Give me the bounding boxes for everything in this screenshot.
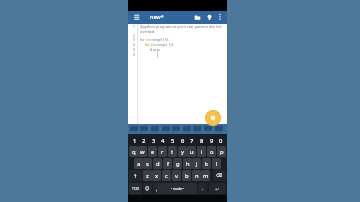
staticText: y bbox=[181, 148, 184, 156]
staticText: 5 bbox=[133, 47, 135, 52]
button[interactable]: ⌫ bbox=[213, 170, 226, 181]
staticText: ☺ bbox=[145, 186, 150, 191]
staticText: , bbox=[156, 186, 158, 192]
button[interactable]: p bbox=[217, 146, 226, 157]
button[interactable] bbox=[183, 126, 191, 131]
button[interactable]: 6 bbox=[178, 135, 188, 146]
button[interactable] bbox=[193, 126, 201, 131]
button[interactable]: ↵ bbox=[209, 183, 226, 194]
staticText: 4 bbox=[133, 42, 135, 47]
staticText: q bbox=[132, 148, 136, 156]
button[interactable]: a bbox=[134, 158, 143, 169]
staticText: 1 bbox=[133, 24, 135, 29]
button[interactable]: • mode • bbox=[158, 183, 197, 194]
staticText: s bbox=[146, 160, 149, 168]
staticText: u bbox=[190, 148, 194, 156]
button[interactable]: ↑ bbox=[129, 170, 142, 181]
button[interactable]: x bbox=[152, 170, 161, 181]
button[interactable]: e bbox=[148, 146, 157, 157]
button[interactable]: j bbox=[192, 158, 201, 169]
button[interactable]: i bbox=[197, 146, 206, 157]
staticText: 6 bbox=[133, 52, 135, 57]
button[interactable]: g bbox=[173, 158, 182, 169]
button[interactable]: v bbox=[172, 170, 181, 181]
button[interactable]: ☺ bbox=[143, 183, 152, 194]
staticText: ↑ bbox=[133, 173, 138, 179]
button[interactable] bbox=[162, 126, 170, 131]
staticText: o bbox=[210, 148, 214, 156]
button[interactable] bbox=[130, 126, 138, 131]
button[interactable]: o bbox=[207, 146, 216, 157]
button[interactable]: h bbox=[183, 158, 192, 169]
staticText: w bbox=[140, 148, 145, 156]
button[interactable]: . bbox=[198, 183, 207, 194]
staticText: l bbox=[216, 160, 218, 168]
button[interactable] bbox=[151, 126, 159, 131]
button[interactable]: 9 bbox=[207, 135, 217, 146]
button[interactable]: n bbox=[192, 170, 201, 181]
staticText: p bbox=[220, 148, 224, 156]
button[interactable] bbox=[172, 126, 180, 131]
button[interactable]: c bbox=[162, 170, 171, 181]
button[interactable]: f bbox=[163, 158, 172, 169]
button[interactable]: s bbox=[143, 158, 152, 169]
button[interactable] bbox=[206, 14, 213, 21]
button[interactable]: z bbox=[143, 170, 152, 181]
button[interactable]: d bbox=[153, 158, 162, 169]
button[interactable]: 8 bbox=[197, 135, 207, 146]
button[interactable] bbox=[205, 110, 221, 126]
button[interactable]: k bbox=[202, 158, 211, 169]
button[interactable]: u bbox=[187, 146, 196, 157]
button[interactable]: l bbox=[212, 158, 221, 169]
button[interactable]: 1 bbox=[130, 135, 140, 146]
staticText: # prin bbox=[150, 47, 160, 52]
staticText: • mode • bbox=[171, 187, 184, 191]
staticText: c bbox=[165, 172, 168, 180]
button[interactable]: 7 bbox=[187, 135, 197, 146]
button[interactable] bbox=[140, 126, 148, 131]
staticText: t bbox=[171, 148, 174, 156]
button[interactable]: w bbox=[138, 146, 147, 157]
button[interactable]: t bbox=[168, 146, 177, 157]
staticText: 8 bbox=[200, 137, 204, 145]
staticText: overlwd bbox=[140, 29, 155, 34]
button[interactable] bbox=[215, 126, 223, 131]
staticText: k bbox=[205, 160, 209, 168]
button[interactable]: b bbox=[182, 170, 191, 181]
staticText: v bbox=[175, 172, 178, 180]
button[interactable]: ?123 bbox=[129, 183, 142, 194]
staticText: z bbox=[146, 172, 149, 180]
staticText: ⌫ bbox=[216, 173, 223, 178]
button[interactable]: 2 bbox=[139, 135, 149, 146]
staticText: . bbox=[202, 185, 204, 192]
button[interactable]: y bbox=[178, 146, 187, 157]
button[interactable] bbox=[133, 13, 141, 21]
button[interactable]: m bbox=[201, 170, 210, 181]
staticText: 3 bbox=[133, 37, 135, 42]
button[interactable] bbox=[194, 14, 201, 21]
button[interactable]: 3 bbox=[149, 135, 159, 146]
button[interactable]: r bbox=[158, 146, 167, 157]
button[interactable] bbox=[204, 126, 212, 131]
button[interactable]: 0 bbox=[216, 135, 226, 146]
staticText: ↵ bbox=[215, 186, 220, 192]
button[interactable] bbox=[218, 13, 222, 21]
button[interactable]: 4 bbox=[158, 135, 168, 146]
staticText: b bbox=[185, 172, 189, 180]
staticText: e bbox=[151, 148, 155, 156]
staticText: 5 bbox=[171, 137, 175, 145]
staticText: 6 bbox=[181, 137, 185, 145]
staticText: i bbox=[201, 148, 203, 156]
button[interactable]: 5 bbox=[168, 135, 178, 146]
button[interactable]: , bbox=[153, 183, 160, 194]
staticText: g bbox=[176, 160, 180, 168]
button[interactable]: q bbox=[129, 146, 138, 157]
staticText: 1 bbox=[133, 137, 137, 145]
staticText: h bbox=[186, 160, 190, 168]
staticText: 4 bbox=[161, 137, 165, 145]
staticText: n bbox=[195, 172, 199, 180]
staticText: f bbox=[167, 160, 169, 168]
staticText: 9 bbox=[210, 137, 214, 145]
staticText: 2 bbox=[133, 33, 135, 38]
staticText: new* bbox=[150, 13, 164, 20]
